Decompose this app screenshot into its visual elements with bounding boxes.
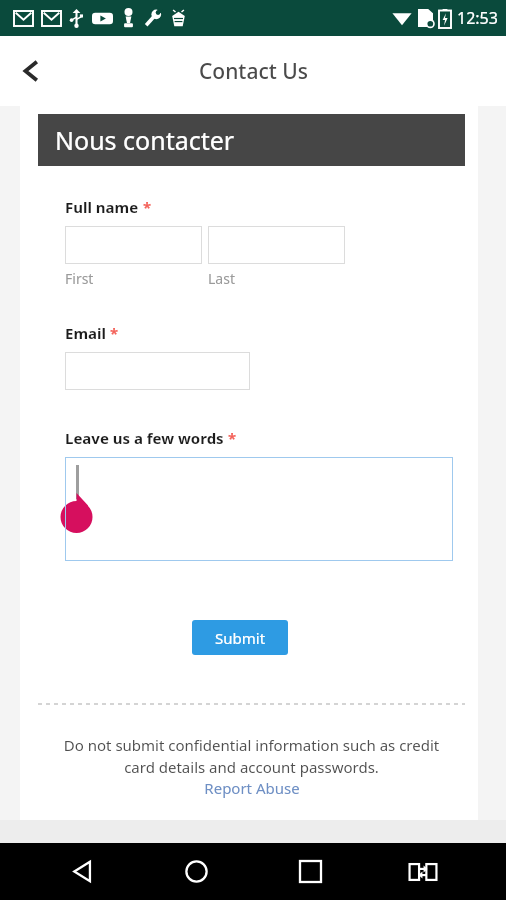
staticText: 12:53 [457, 7, 498, 29]
staticText: * [110, 323, 119, 343]
button[interactable] [208, 226, 345, 264]
button[interactable]: Rotate screen [393, 843, 453, 900]
staticText: Submit [215, 628, 266, 648]
staticText: Do not submit confidential information s… [50, 735, 453, 778]
button[interactable] [65, 457, 453, 561]
button[interactable]: Report Abuse [204, 778, 300, 798]
button[interactable]: Back [53, 843, 113, 900]
button[interactable]: Back [4, 43, 60, 99]
staticText: Leave us a few words [65, 428, 224, 448]
staticText: * [228, 428, 237, 448]
staticText: Full name [65, 197, 139, 217]
button[interactable]: Home [166, 843, 226, 900]
staticText: Email [65, 323, 106, 343]
staticText: Report Abuse [204, 778, 300, 798]
button[interactable] [65, 352, 250, 390]
staticText: First [65, 269, 94, 288]
button[interactable] [65, 226, 202, 264]
staticText: Contact Us [199, 57, 308, 86]
button[interactable]: Submit [192, 620, 288, 655]
staticText: Last [208, 269, 235, 288]
button[interactable]: Recent apps [280, 843, 340, 900]
staticText: * [143, 197, 152, 217]
staticText: Nous contacter [55, 123, 235, 157]
